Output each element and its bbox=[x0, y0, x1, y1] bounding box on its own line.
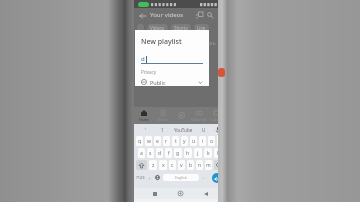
button[interactable]: U bbox=[196, 124, 212, 135]
button[interactable]: Back bbox=[137, 10, 148, 21]
button[interactable]: More options bbox=[215, 11, 223, 19]
staticText: Shorts bbox=[174, 25, 188, 31]
staticText: Public bbox=[150, 79, 166, 86]
button[interactable]: x bbox=[159, 160, 167, 170]
staticText: n bbox=[198, 162, 202, 169]
button[interactable]: p bbox=[217, 136, 224, 146]
staticText: Library bbox=[211, 117, 223, 122]
button[interactable]: u bbox=[190, 136, 197, 146]
button[interactable]: y bbox=[181, 136, 188, 146]
button[interactable]: w bbox=[145, 136, 152, 146]
staticText: d bbox=[158, 150, 162, 157]
staticText: b bbox=[189, 162, 193, 169]
button[interactable]: Subscriptions bbox=[190, 107, 208, 124]
staticText: Shorts bbox=[157, 117, 168, 122]
button[interactable]: i bbox=[199, 136, 206, 146]
button[interactable]: English bbox=[163, 174, 199, 181]
staticText: m bbox=[206, 162, 211, 169]
staticText: i bbox=[202, 138, 204, 145]
staticText: h bbox=[186, 150, 190, 157]
staticText: a bbox=[140, 150, 143, 157]
staticText: q bbox=[138, 138, 142, 145]
staticText: c bbox=[171, 162, 174, 169]
button[interactable]: s bbox=[147, 148, 154, 158]
button[interactable]: Dismiss bbox=[216, 38, 223, 45]
button[interactable]: Voice input bbox=[212, 124, 223, 135]
button[interactable]: Shorts bbox=[171, 24, 191, 32]
button[interactable]: Cast bbox=[195, 10, 205, 20]
button[interactable]: Home bbox=[134, 107, 153, 124]
button[interactable]: Back bbox=[201, 189, 210, 198]
staticText: y bbox=[183, 138, 186, 145]
staticText: . bbox=[203, 174, 205, 181]
staticText: Your videos bbox=[150, 11, 184, 19]
staticText: v bbox=[180, 162, 183, 169]
staticText: YouTube bbox=[174, 127, 193, 133]
staticText: z bbox=[152, 162, 155, 169]
staticText: Home bbox=[139, 117, 149, 122]
button[interactable]: n bbox=[196, 160, 203, 170]
button[interactable]: Home bbox=[176, 189, 185, 198]
button[interactable]: Emoji bbox=[153, 172, 162, 183]
staticText: 1 bbox=[161, 127, 164, 133]
button[interactable]: Filter bbox=[137, 24, 144, 31]
staticText: , bbox=[149, 174, 151, 181]
staticText: g bbox=[176, 150, 180, 157]
button[interactable]: Videos bbox=[147, 24, 168, 32]
staticText: r bbox=[165, 138, 168, 145]
button[interactable]: r bbox=[163, 136, 170, 146]
staticText: ' bbox=[145, 127, 147, 133]
staticText: Privacy bbox=[141, 69, 157, 75]
button[interactable]: Key bbox=[136, 160, 147, 170]
button[interactable]: Period bbox=[200, 172, 208, 183]
staticText: verification takes fewer than 24 h bbox=[153, 41, 216, 46]
button[interactable]: YouTube bbox=[170, 124, 196, 135]
button[interactable]: Shorts bbox=[153, 107, 172, 124]
button[interactable]: Library bbox=[208, 107, 226, 124]
button[interactable]: k bbox=[204, 148, 212, 158]
staticText: t bbox=[175, 138, 177, 145]
staticText: x bbox=[162, 162, 165, 169]
staticText: k bbox=[207, 150, 210, 157]
button[interactable]: e bbox=[154, 136, 161, 146]
button[interactable]: Numbers bbox=[135, 172, 146, 183]
staticText: English bbox=[175, 175, 187, 180]
staticText: Live bbox=[197, 25, 206, 31]
button[interactable]: Create bbox=[172, 107, 190, 124]
button[interactable]: h bbox=[184, 148, 192, 158]
button[interactable]: q bbox=[136, 136, 143, 146]
button[interactable]: Public bbox=[141, 78, 203, 86]
staticText: w bbox=[147, 138, 151, 145]
button[interactable]: d bbox=[156, 148, 163, 158]
staticText: f bbox=[168, 150, 170, 157]
button[interactable]: o bbox=[208, 136, 215, 146]
staticText: New playlist bbox=[141, 37, 182, 47]
button[interactable]: 1 bbox=[154, 124, 170, 135]
button[interactable]: Enter bbox=[212, 173, 222, 183]
button[interactable]: Key bbox=[214, 160, 224, 170]
button[interactable]: a bbox=[138, 148, 145, 158]
button[interactable]: l bbox=[214, 148, 222, 158]
button[interactable]: Comma bbox=[146, 172, 153, 183]
button[interactable]: j bbox=[194, 148, 202, 158]
button[interactable]: v bbox=[178, 160, 185, 170]
staticText: ?123 bbox=[136, 175, 145, 180]
staticText: YouTube channel bbox=[153, 36, 186, 41]
button[interactable]: ' bbox=[137, 124, 154, 135]
button[interactable]: f bbox=[165, 148, 172, 158]
button[interactable]: m bbox=[205, 160, 212, 170]
button[interactable]: b bbox=[187, 160, 194, 170]
button[interactable]: g bbox=[174, 148, 182, 158]
staticText: o bbox=[210, 138, 214, 145]
staticText: j bbox=[197, 150, 199, 157]
button[interactable]: t bbox=[172, 136, 179, 146]
staticText: e bbox=[156, 138, 159, 145]
button[interactable]: Live bbox=[194, 24, 209, 32]
button[interactable]: Search bbox=[205, 10, 215, 20]
button[interactable]: c bbox=[169, 160, 176, 170]
staticText: Videos bbox=[150, 25, 165, 31]
staticText: l bbox=[217, 150, 219, 157]
button[interactable]: z bbox=[149, 160, 157, 170]
button[interactable]: Recents bbox=[150, 189, 159, 198]
